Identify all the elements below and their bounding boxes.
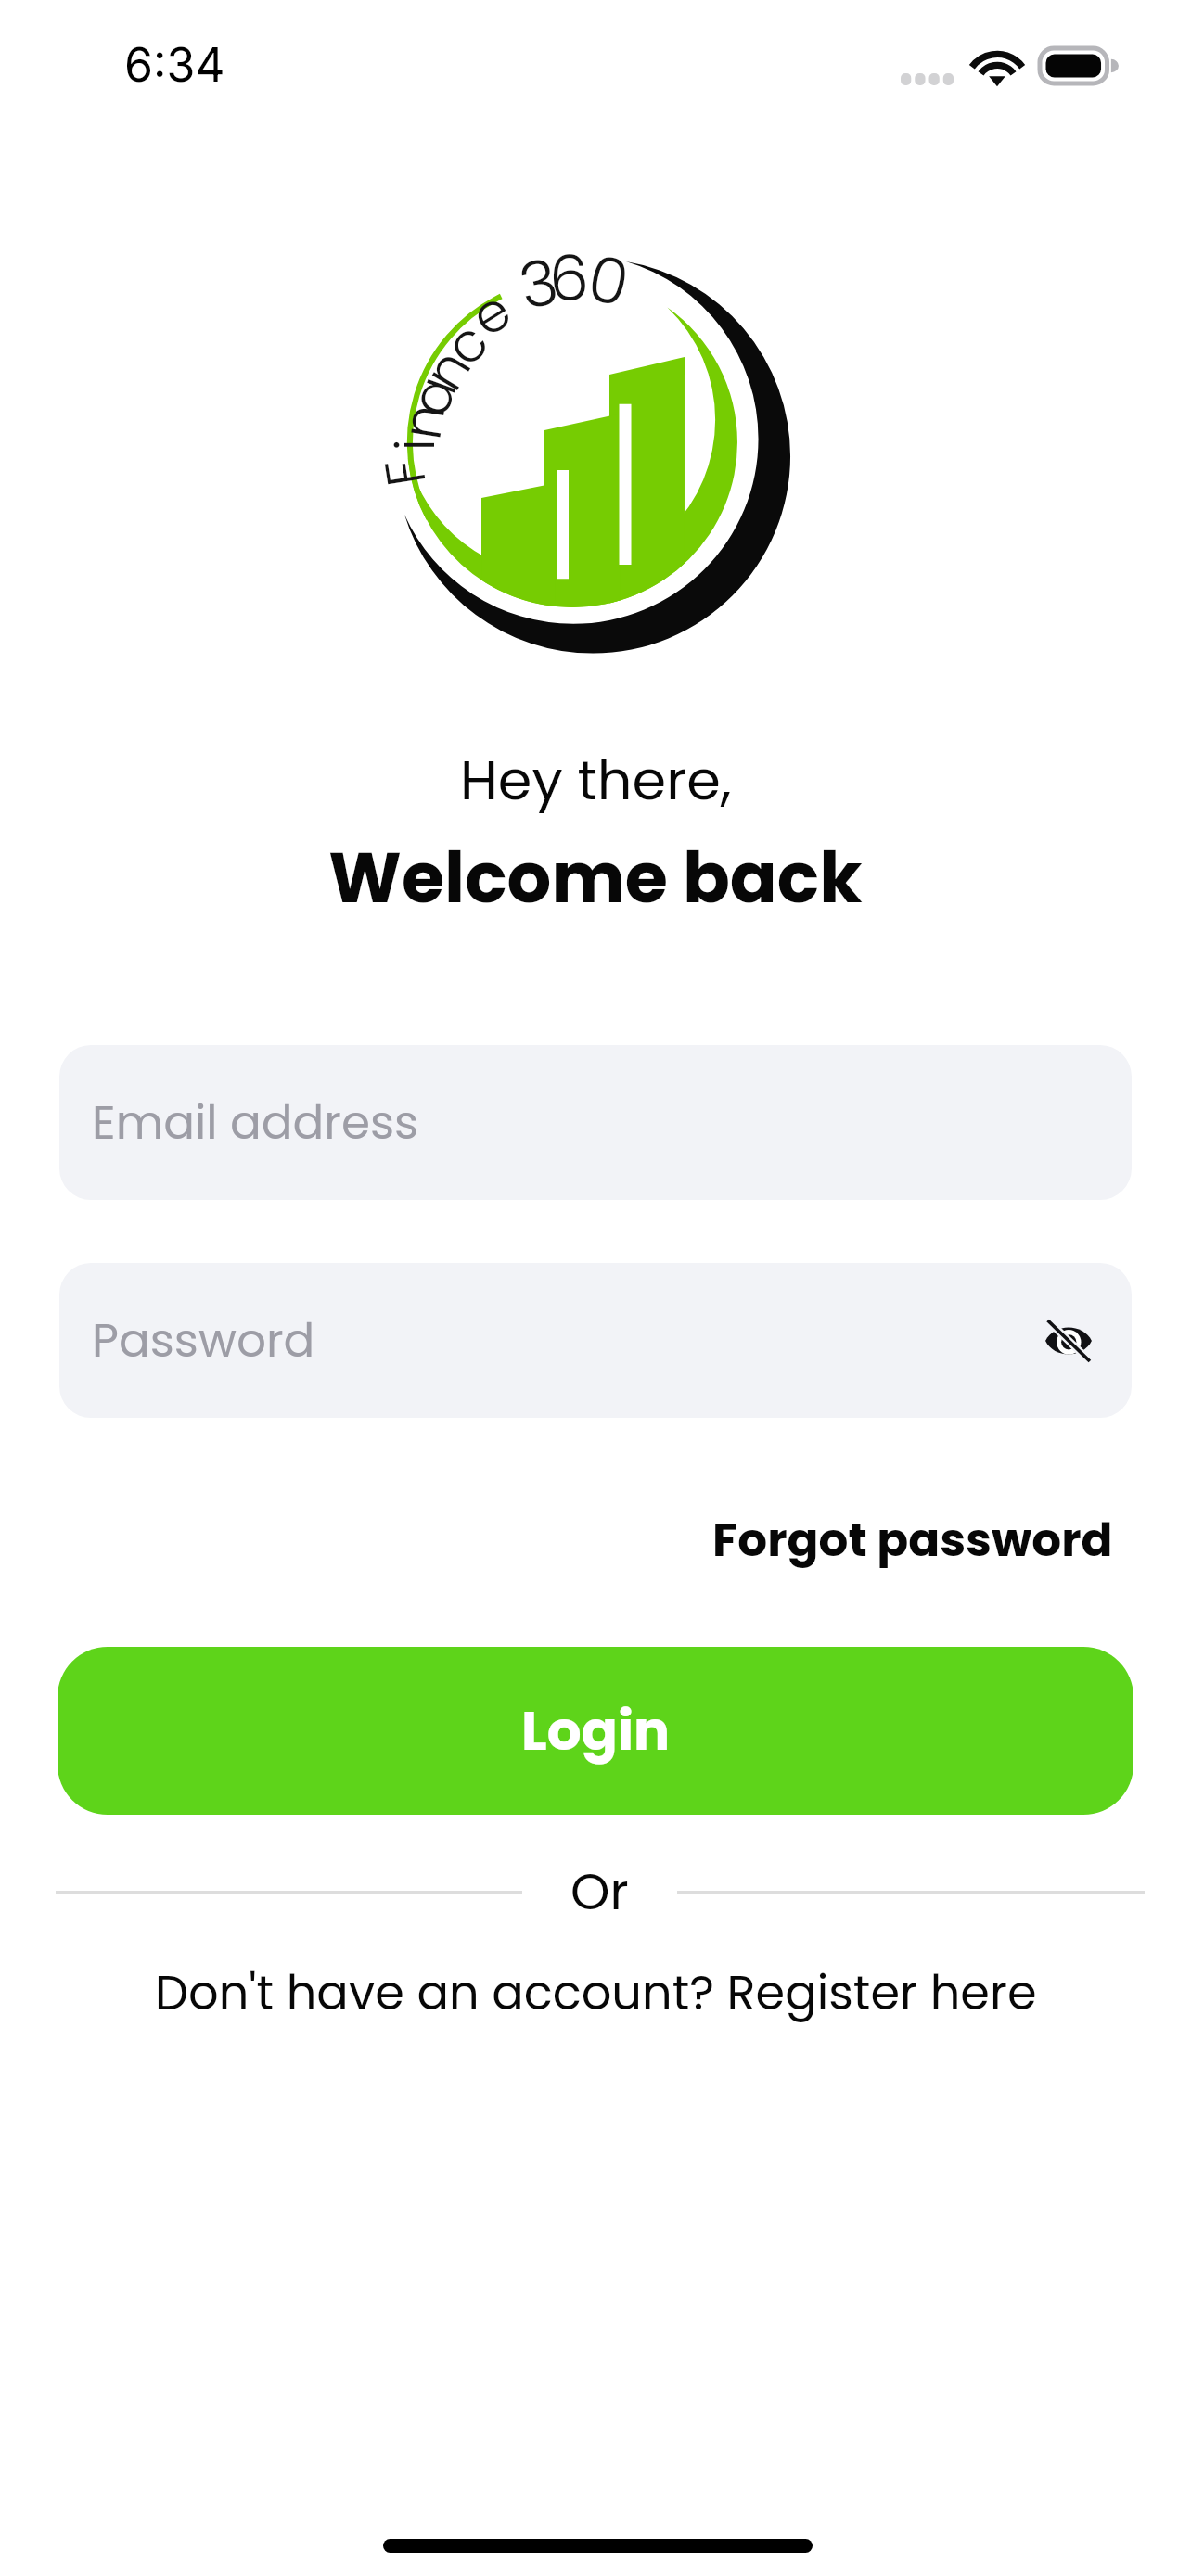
staticText: a bbox=[392, 365, 475, 426]
staticText: 6 bbox=[548, 234, 590, 323]
staticText: n bbox=[384, 399, 463, 444]
staticText: e bbox=[457, 272, 526, 354]
staticText: Password bbox=[92, 1308, 315, 1373]
staticText: Login bbox=[521, 1693, 671, 1768]
staticText: Welcome back bbox=[328, 829, 863, 926]
button[interactable]: Password bbox=[59, 1263, 1132, 1418]
staticText: 6:34 bbox=[124, 37, 225, 93]
staticText: F bbox=[366, 453, 444, 492]
button[interactable]: Forgot password bbox=[712, 1508, 1113, 1573]
staticText: 0 bbox=[580, 234, 637, 329]
staticText: Email address bbox=[92, 1090, 419, 1155]
staticText: i bbox=[377, 438, 452, 451]
staticText: n bbox=[407, 335, 489, 404]
staticText: Don't have an account? Register here bbox=[155, 1959, 1037, 2025]
button[interactable]: Don't have an account? Register here bbox=[155, 1959, 1037, 2025]
staticText: Or bbox=[570, 1856, 629, 1927]
staticText: c bbox=[428, 305, 505, 382]
staticText: Hey there, bbox=[460, 742, 732, 819]
staticText: 3 bbox=[512, 237, 566, 331]
button[interactable]: Email address bbox=[59, 1045, 1132, 1200]
button[interactable]: Show password bbox=[1031, 1304, 1106, 1378]
button[interactable]: Login bbox=[58, 1647, 1133, 1815]
staticText: Forgot password bbox=[712, 1508, 1113, 1573]
